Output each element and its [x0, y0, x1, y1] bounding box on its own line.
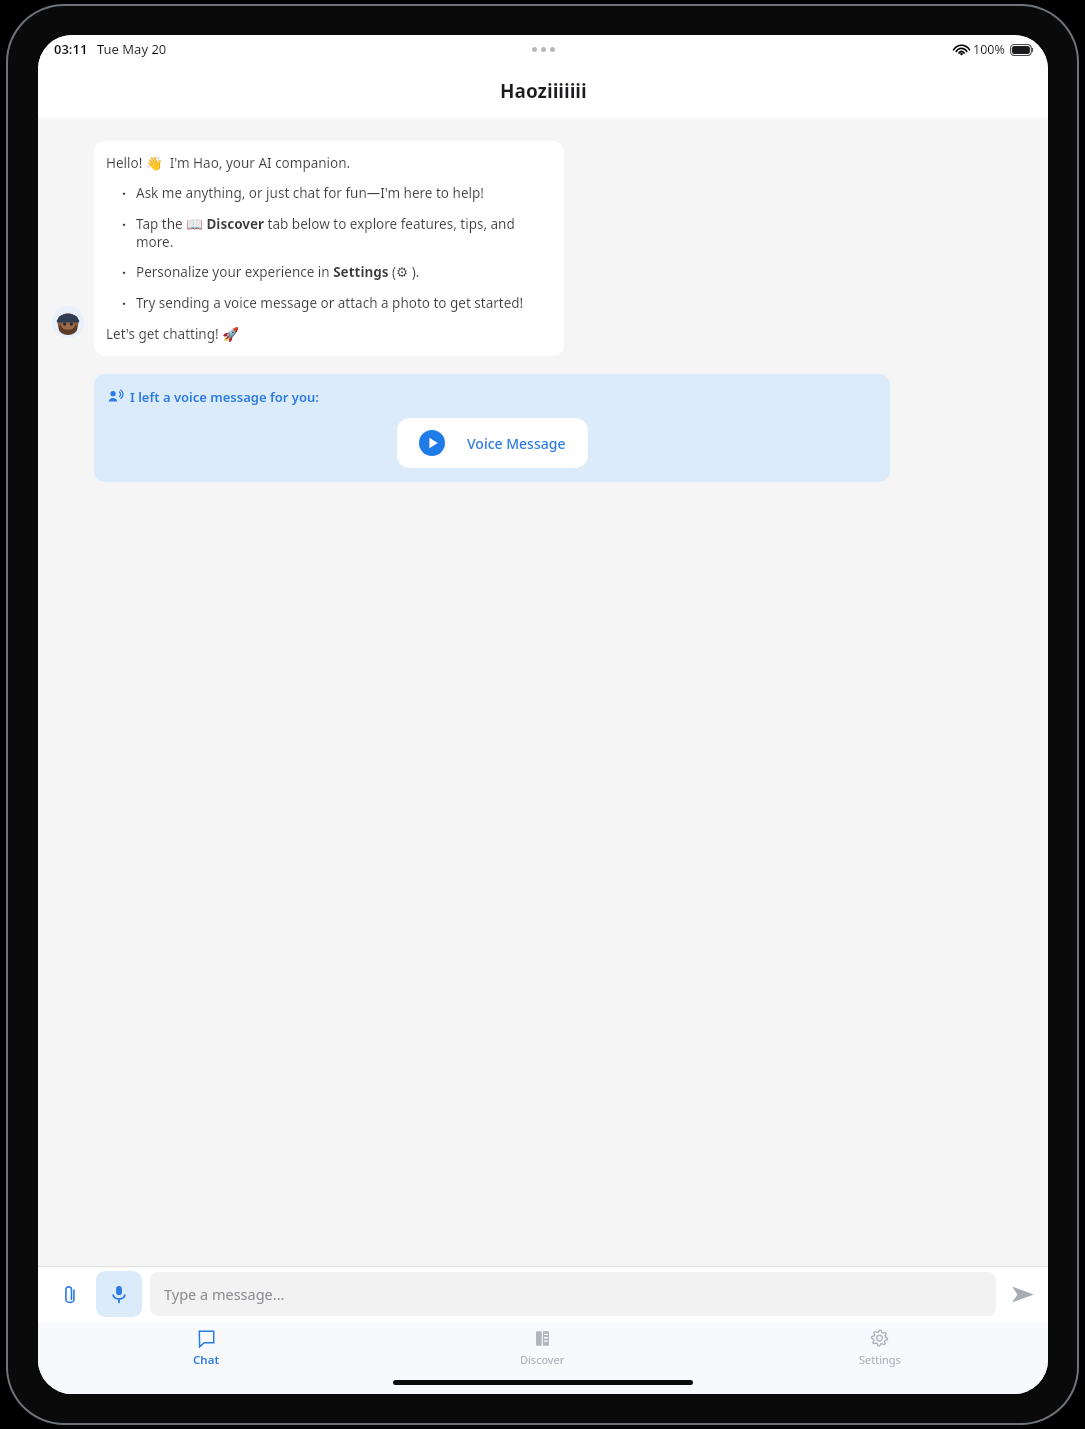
- button[interactable]: Voice Message: [397, 418, 588, 468]
- button[interactable]: Attach file: [48, 1272, 92, 1316]
- button[interactable]: Send: [996, 1268, 1048, 1320]
- staticText: ·: [122, 294, 126, 313]
- staticText: ·: [122, 184, 126, 203]
- staticText: ·: [122, 215, 126, 234]
- staticText: Chat: [193, 1352, 220, 1368]
- staticText: 100%: [973, 41, 1005, 58]
- staticText: Voice Message: [467, 434, 566, 453]
- staticText: ·: [122, 263, 126, 282]
- staticText: Tue May 20: [97, 40, 167, 58]
- staticText: Try sending a voice message or attach a …: [136, 294, 524, 312]
- staticText: Hello! 👋 I'm Hao, your AI companion.: [106, 154, 351, 172]
- button[interactable]: Discover: [374, 1322, 711, 1374]
- button[interactable]: Hello! 👋 I'm Hao, your AI companion.: [94, 141, 564, 356]
- staticText: I left a voice message for you:: [130, 388, 319, 406]
- staticText: Haoziiiiiii: [500, 78, 587, 104]
- staticText: Settings: [859, 1352, 901, 1367]
- staticText: Let's get chatting! 🚀: [106, 325, 239, 343]
- button[interactable]: Chat: [38, 1322, 374, 1374]
- button[interactable]: Record voice message: [96, 1271, 142, 1317]
- staticText: Discover: [520, 1352, 565, 1367]
- button[interactable]: Type a message...: [150, 1272, 996, 1316]
- staticText: Personalize your experience in Settings …: [136, 263, 420, 281]
- staticText: 03:11: [54, 40, 88, 58]
- staticText: Ask me anything, or just chat for fun—I'…: [136, 184, 484, 202]
- button[interactable]: I left a voice message for you:: [94, 374, 890, 482]
- button[interactable]: Settings: [711, 1322, 1048, 1374]
- staticText: Tap the 📖 Discover tab below to explore …: [136, 215, 552, 251]
- staticText: Type a message...: [164, 1284, 285, 1304]
